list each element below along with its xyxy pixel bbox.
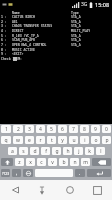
staticText: 8 : (1, 48, 7, 52)
button[interactable]: y (58, 136, 67, 144)
button[interactable]: g (52, 147, 61, 155)
button[interactable]: l (96, 147, 105, 155)
staticText: j (78, 148, 80, 155)
staticText: 9 (94, 126, 97, 133)
staticText: , (16, 170, 18, 177)
button[interactable]: m (81, 158, 90, 166)
button[interactable]: 1 (1, 125, 11, 133)
staticText: n (73, 159, 77, 166)
button[interactable]: Comma (12, 169, 21, 177)
staticText: MUSIC ACTIVE (12, 48, 35, 52)
button[interactable]: 5 (47, 125, 56, 133)
button[interactable]: i (80, 136, 89, 144)
staticText: b (62, 159, 66, 166)
button[interactable]: u (69, 136, 78, 144)
button[interactable]: Language (23, 169, 33, 177)
staticText: STA_A (71, 43, 81, 47)
staticText: SCAN_PUB_APR (12, 38, 35, 42)
staticText: 1 (5, 126, 8, 133)
staticText: 6 : (1, 38, 7, 42)
staticText: u (72, 137, 76, 144)
button[interactable]: q (1, 136, 11, 144)
staticText: e (28, 137, 31, 144)
staticText: Name (12, 11, 20, 15)
button[interactable]: j (74, 147, 83, 155)
button[interactable]: a (8, 147, 17, 155)
staticText: 7 : (1, 43, 7, 47)
button[interactable]: Backspace (92, 158, 111, 166)
staticText: d (33, 148, 37, 155)
staticText: m (83, 159, 88, 166)
button[interactable]: e (25, 136, 34, 144)
staticText: Check ITEM: (1, 57, 23, 61)
staticText: STA_A (71, 20, 81, 24)
staticText: z (18, 159, 21, 166)
staticText: 1 : (1, 15, 7, 19)
staticText: Type (71, 11, 79, 15)
button[interactable]: 6 (58, 125, 67, 133)
button[interactable]: b (59, 158, 68, 166)
staticText: r (39, 137, 42, 144)
button[interactable]: 8 (80, 125, 89, 133)
button[interactable]: t (47, 136, 56, 144)
button[interactable]: Back (3, 180, 27, 200)
button[interactable]: Home (58, 180, 82, 200)
button[interactable]: 9 (91, 125, 100, 133)
staticText: CHAOS TRANSFER STATUS (12, 24, 53, 28)
button[interactable]: s (19, 147, 28, 155)
staticText: x (29, 159, 32, 166)
button[interactable]: 4 (36, 125, 45, 133)
button[interactable]: 0 (102, 125, 111, 133)
staticText: ?123 (2, 171, 10, 175)
staticText: 3 (28, 126, 31, 133)
staticText: s (22, 148, 25, 155)
staticText: R_103 /VC_TP_A (12, 34, 39, 38)
button[interactable]: 3 (25, 125, 34, 133)
button[interactable]: d (30, 147, 39, 155)
staticText: w (16, 137, 20, 144)
staticText: t (51, 137, 53, 144)
button[interactable]: Period (75, 169, 85, 177)
button[interactable]: Recents (85, 180, 109, 200)
staticText: 3 : (1, 24, 7, 28)
button[interactable]: Hide keyboard (30, 180, 54, 200)
staticText: v (51, 159, 54, 166)
staticText: <EXIT> (12, 52, 24, 56)
button[interactable]: Enter (87, 169, 111, 177)
staticText: STA_A (71, 24, 81, 28)
button[interactable]: r (36, 136, 45, 144)
button[interactable]: h (63, 147, 72, 155)
staticText: y (61, 137, 64, 144)
button[interactable]: n (70, 158, 79, 166)
staticText: STA_A (71, 38, 81, 42)
staticText: 15:08 (95, 1, 110, 8)
staticText: 2 : (1, 20, 7, 24)
staticText: o (94, 137, 98, 144)
button[interactable]: c (37, 158, 46, 166)
button[interactable]: 2 (13, 125, 23, 133)
staticText: 0 (105, 126, 108, 133)
staticText: DIRECT (12, 29, 24, 33)
button[interactable]: z (15, 158, 24, 166)
button[interactable]: Symbols (1, 169, 10, 177)
button[interactable]: f (41, 147, 50, 155)
staticText: 9 : (1, 52, 7, 56)
staticText: g (55, 148, 59, 155)
button[interactable]: p (102, 136, 111, 144)
button[interactable]: k (85, 147, 94, 155)
staticText: 5 : (1, 34, 7, 38)
staticText: k (88, 148, 91, 155)
staticText: AE1 (12, 20, 18, 24)
button[interactable]: w (13, 136, 23, 144)
staticText: a (11, 148, 14, 155)
button[interactable]: Space (35, 169, 73, 177)
button[interactable]: x (26, 158, 35, 166)
button[interactable]: v (48, 158, 57, 166)
staticText: 4 (39, 126, 42, 133)
button[interactable]: 7 (69, 125, 78, 133)
button[interactable]: o (91, 136, 100, 144)
staticText: i (84, 137, 86, 144)
staticText: . (79, 170, 81, 177)
button[interactable]: Shift (1, 158, 13, 166)
staticText: 2 (17, 126, 20, 133)
